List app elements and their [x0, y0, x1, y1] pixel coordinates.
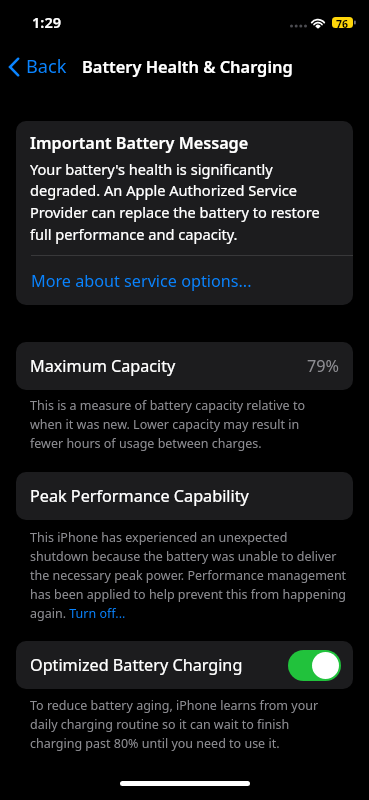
button[interactable]: Back — [0, 48, 77, 85]
staticText: 76 — [336, 17, 349, 28]
button[interactable]: Optimized Battery Charging — [16, 641, 353, 689]
staticText: To reduce battery aging, iPhone learns f… — [30, 697, 319, 752]
staticText: Important Battery Message — [30, 132, 249, 154]
button[interactable]: Peak Performance Capability — [16, 472, 353, 520]
staticText: Your battery's health is significantly d… — [30, 159, 339, 244]
staticText: More about service options... — [31, 270, 252, 292]
button[interactable]: Optimized Battery Charging toggle — [288, 650, 341, 681]
staticText: This iPhone has experienced an unexpecte… — [30, 529, 347, 622]
staticText: Back — [26, 54, 67, 79]
staticText: This is a measure of battery capacity re… — [30, 397, 305, 452]
button[interactable]: More about service options... — [16, 256, 353, 305]
staticText: 79% — [307, 355, 339, 377]
staticText: 1:29 — [32, 12, 62, 32]
button[interactable]: Maximum Capacity — [16, 342, 353, 390]
staticText: Battery Health & Charging — [82, 55, 293, 77]
staticText: Peak Performance Capability — [30, 485, 249, 507]
staticText: Optimized Battery Charging — [30, 654, 243, 676]
staticText: Maximum Capacity — [30, 355, 176, 377]
